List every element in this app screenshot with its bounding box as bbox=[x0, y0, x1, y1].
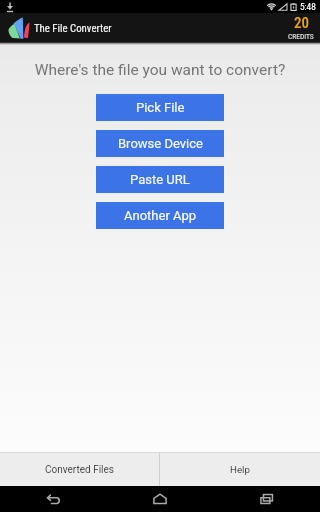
staticText: 20 bbox=[294, 14, 309, 32]
staticText: Help bbox=[230, 464, 250, 475]
button[interactable]: Help bbox=[160, 453, 320, 486]
staticText: The File Converter bbox=[34, 22, 112, 35]
button[interactable]: Recent apps bbox=[213, 486, 320, 512]
button[interactable]: Browse Device bbox=[96, 130, 224, 157]
staticText: Paste URL bbox=[130, 172, 190, 187]
button[interactable]: Back bbox=[0, 486, 106, 512]
button[interactable]: Another App bbox=[96, 202, 224, 229]
staticText: Pick File bbox=[136, 100, 185, 115]
button[interactable]: Converted Files bbox=[0, 453, 159, 486]
staticText: CREDITS bbox=[288, 32, 314, 41]
button[interactable]: Home bbox=[106, 486, 213, 512]
button[interactable]: Pick File bbox=[96, 94, 224, 121]
staticText: Browse Device bbox=[118, 136, 203, 151]
staticText: 5:48 bbox=[300, 2, 316, 12]
button[interactable]: Paste URL bbox=[96, 166, 224, 193]
staticText: Another App bbox=[124, 208, 197, 223]
staticText: Where's the file you want to convert? bbox=[0, 61, 320, 79]
staticText: Converted Files bbox=[45, 464, 114, 476]
button[interactable]: 20 bbox=[288, 14, 314, 41]
